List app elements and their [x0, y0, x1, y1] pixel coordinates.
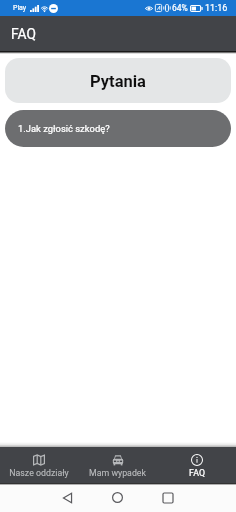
- button[interactable]: Back: [50, 483, 85, 512]
- button[interactable]: FAQ: [157, 447, 236, 483]
- staticText: 11:16: [205, 3, 228, 14]
- button[interactable]: Recent apps: [150, 483, 185, 512]
- button[interactable]: Nasze oddziały: [0, 447, 78, 483]
- staticText: Nasze oddziały: [9, 468, 69, 478]
- staticText: Mam wypadek: [89, 468, 146, 478]
- staticText: FAQ: [11, 26, 36, 42]
- staticText: FAQ: [189, 468, 205, 478]
- staticText: Pytania: [90, 72, 146, 91]
- button[interactable]: Home: [100, 483, 135, 512]
- staticText: 1.Jak zgłosić szkodę?: [18, 123, 110, 134]
- button[interactable]: 1.Jak zgłosić szkodę?: [5, 110, 231, 147]
- staticText: Play: [13, 4, 27, 12]
- button[interactable]: Pytania: [5, 58, 231, 103]
- staticText: 64%: [172, 3, 188, 13]
- button[interactable]: Mam wypadek: [78, 447, 157, 483]
